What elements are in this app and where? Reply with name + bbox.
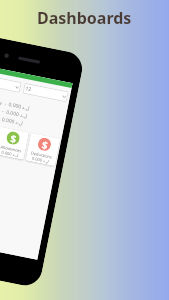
- staticText: 0.000 ل.د: [1, 150, 20, 158]
- other: Expand: [62, 95, 66, 98]
- button[interactable]: $: [25, 133, 60, 166]
- staticText: 0.000 ل.د: [31, 156, 50, 164]
- staticText: $: [9, 131, 18, 145]
- staticText: $: [41, 137, 49, 151]
- button[interactable]: Expand: [0, 73, 22, 93]
- staticText: 12: [25, 85, 32, 93]
- staticText: Dashboards: [37, 7, 132, 29]
- staticText: Allowances: [0, 144, 22, 153]
- staticText: Total Salary - 0.000 ل.د: [0, 102, 29, 120]
- button[interactable]: $: [0, 127, 29, 160]
- staticText: Basic Salary - 0.000 ل.د: [0, 94, 30, 112]
- staticText: Deductions: [31, 150, 53, 160]
- button[interactable]: 12: [22, 83, 69, 102]
- staticText: Net Salary - 0.000 ل.د: [0, 110, 24, 127]
- other: Expand: [15, 86, 19, 89]
